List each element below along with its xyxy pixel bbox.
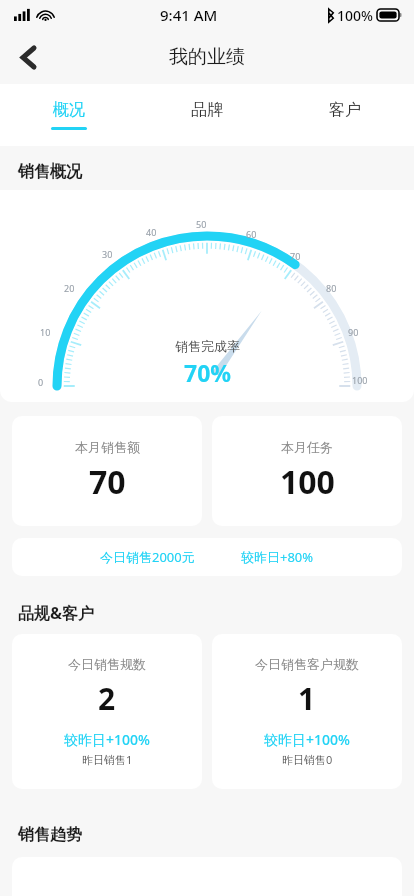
staticText: 0 — [38, 376, 44, 388]
staticText: 较昨日+100% — [64, 730, 150, 749]
staticText: 9:41 AM — [160, 5, 218, 25]
staticText: 1 — [298, 678, 316, 719]
button[interactable]: 客户 — [276, 84, 414, 146]
button[interactable]: 今日销售规数 — [12, 634, 202, 789]
staticText: 销售完成率 — [175, 338, 240, 354]
staticText: 概况 — [53, 100, 85, 120]
staticText: 今日销售2000元 — [100, 548, 195, 566]
staticText: 40 — [146, 226, 157, 238]
staticText: 销售趋势 — [18, 825, 82, 845]
button[interactable]: 今日销售客户规数 — [212, 634, 402, 789]
staticText: 今日销售规数 — [68, 656, 146, 672]
staticText: 品规&客户 — [18, 602, 95, 624]
staticText: 今日销售客户规数 — [255, 656, 359, 672]
staticText: 20 — [64, 282, 75, 294]
staticText: 昨日销售1 — [82, 752, 133, 767]
button[interactable]: Back — [6, 35, 50, 79]
staticText: 70% — [184, 357, 232, 388]
staticText: 10 — [40, 326, 51, 338]
staticText: 客户 — [329, 100, 361, 120]
staticText: 较昨日+100% — [264, 730, 350, 749]
button[interactable]: 概况 — [0, 84, 138, 146]
button[interactable]: 本月销售额 — [12, 416, 202, 526]
staticText: 30 — [102, 248, 113, 260]
staticText: 70 — [89, 460, 126, 504]
staticText: 100 — [280, 460, 335, 504]
staticText: 60 — [246, 228, 257, 240]
staticText: 100 — [352, 374, 368, 386]
staticText: 我的业绩 — [169, 45, 245, 69]
button[interactable]: 本月任务 — [212, 416, 402, 526]
button[interactable]: 品牌 — [138, 84, 276, 146]
staticText: 本月任务 — [281, 439, 333, 455]
staticText: 销售概况 — [18, 162, 82, 182]
staticText: 70 — [290, 250, 301, 262]
staticText: 品牌 — [191, 100, 223, 120]
staticText: 昨日销售0 — [282, 752, 333, 767]
staticText: 2 — [98, 678, 116, 719]
staticText: 50 — [196, 218, 207, 230]
staticText: 100% — [337, 6, 373, 25]
staticText: 80 — [326, 282, 337, 294]
staticText: 90 — [348, 326, 359, 338]
button[interactable]: 今日销售2000元 — [12, 538, 402, 576]
staticText: 较昨日+80% — [241, 548, 314, 566]
staticText: 本月销售额 — [75, 439, 140, 455]
